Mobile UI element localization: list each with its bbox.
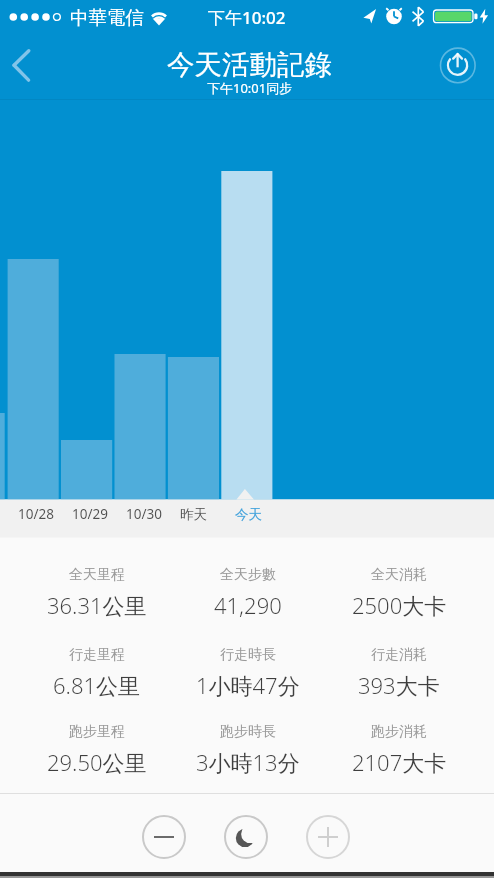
button[interactable]: 10/30 [117, 495, 171, 533]
button[interactable] [4, 42, 44, 86]
staticText: 393大卡 [358, 670, 440, 700]
button[interactable]: 10/28 [9, 495, 63, 533]
staticText: 今天 [235, 506, 262, 523]
button[interactable] [224, 815, 268, 859]
staticText: 下午10:01同步 [207, 79, 293, 97]
staticText: 下午10:02 [208, 6, 286, 29]
staticText: 全天里程 [69, 566, 125, 584]
button[interactable] [440, 47, 476, 83]
staticText: 3小時13分 [196, 747, 300, 777]
staticText: 行走消耗 [371, 646, 427, 664]
staticText: 6.81公里 [53, 670, 141, 700]
staticText: 行走時長 [220, 646, 276, 664]
staticText: 2107大卡 [352, 747, 447, 777]
staticText: 29.50公里 [47, 747, 147, 777]
staticText: 36.31公里 [47, 590, 147, 620]
staticText: 41,290 [214, 590, 282, 620]
staticText: 跑步消耗 [371, 723, 427, 741]
staticText: 全天消耗 [371, 566, 427, 584]
button[interactable]: 10/29 [63, 495, 117, 533]
staticText: 昨天 [180, 506, 207, 523]
staticText: 行走里程 [69, 646, 125, 664]
staticText: 跑步時長 [220, 723, 276, 741]
button[interactable]: 昨天 [167, 495, 219, 533]
staticText: 1小時47分 [196, 670, 300, 700]
button[interactable] [142, 815, 186, 859]
staticText: 10/30 [126, 505, 162, 523]
staticText: 全天步數 [220, 566, 276, 584]
staticText: 2500大卡 [352, 590, 447, 620]
staticText: 中華電信 [70, 6, 144, 29]
staticText: 今天活動記錄 [167, 48, 332, 83]
staticText: 10/28 [18, 505, 54, 523]
button[interactable]: 今天 [222, 495, 274, 533]
button[interactable] [306, 815, 350, 859]
staticText: 跑步里程 [69, 723, 125, 741]
staticText: 10/29 [72, 505, 108, 523]
